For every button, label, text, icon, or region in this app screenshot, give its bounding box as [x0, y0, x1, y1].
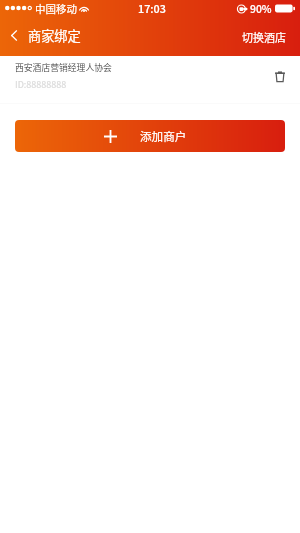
button[interactable]: 添加商户 — [15, 120, 285, 152]
staticText: 17:03 — [138, 0, 166, 16]
staticText: 中国移动 — [35, 1, 77, 16]
button[interactable]: Delete — [269, 65, 291, 87]
staticText: 商家绑定 — [28, 26, 81, 45]
button[interactable]: Back — [2, 24, 26, 46]
staticText: 添加商户 — [140, 128, 187, 145]
button[interactable] — [0, 56, 300, 104]
staticText: 切换酒店 — [242, 29, 286, 45]
staticText: 西安酒店营销经理人协会 — [15, 61, 112, 74]
staticText: 90% — [250, 1, 272, 16]
button[interactable]: 切换酒店 — [230, 24, 300, 50]
staticText: ID:88888888 — [15, 78, 67, 91]
